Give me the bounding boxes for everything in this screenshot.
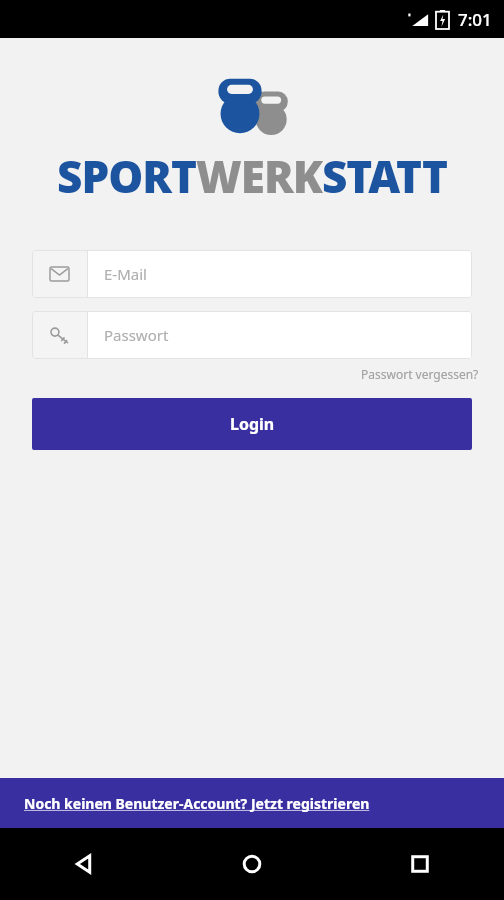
- staticText: E-Mail: [104, 264, 147, 284]
- other: Passwort: [50, 327, 69, 344]
- button[interactable]: Home: [168, 828, 336, 900]
- button[interactable]: Passwort: [32, 311, 472, 359]
- button[interactable]: Recent apps: [336, 828, 504, 900]
- staticText: Passwort: [104, 325, 169, 345]
- button[interactable]: Back: [0, 828, 168, 900]
- staticText: Passwort vergessen?: [361, 366, 479, 382]
- staticText: 7:01: [458, 8, 492, 31]
- button[interactable]: Passwort vergessen?: [361, 363, 504, 385]
- button[interactable]: E-Mail: [32, 250, 472, 298]
- other: E-Mail: [50, 267, 69, 281]
- staticText: SPORTWERKSTATT: [57, 146, 448, 206]
- button[interactable]: Noch keinen Benutzer-Account? Jetzt regi…: [0, 778, 504, 828]
- staticText: Noch keinen Benutzer-Account? Jetzt regi…: [24, 794, 370, 813]
- staticText: Login: [230, 413, 275, 435]
- button[interactable]: Login: [32, 398, 472, 450]
